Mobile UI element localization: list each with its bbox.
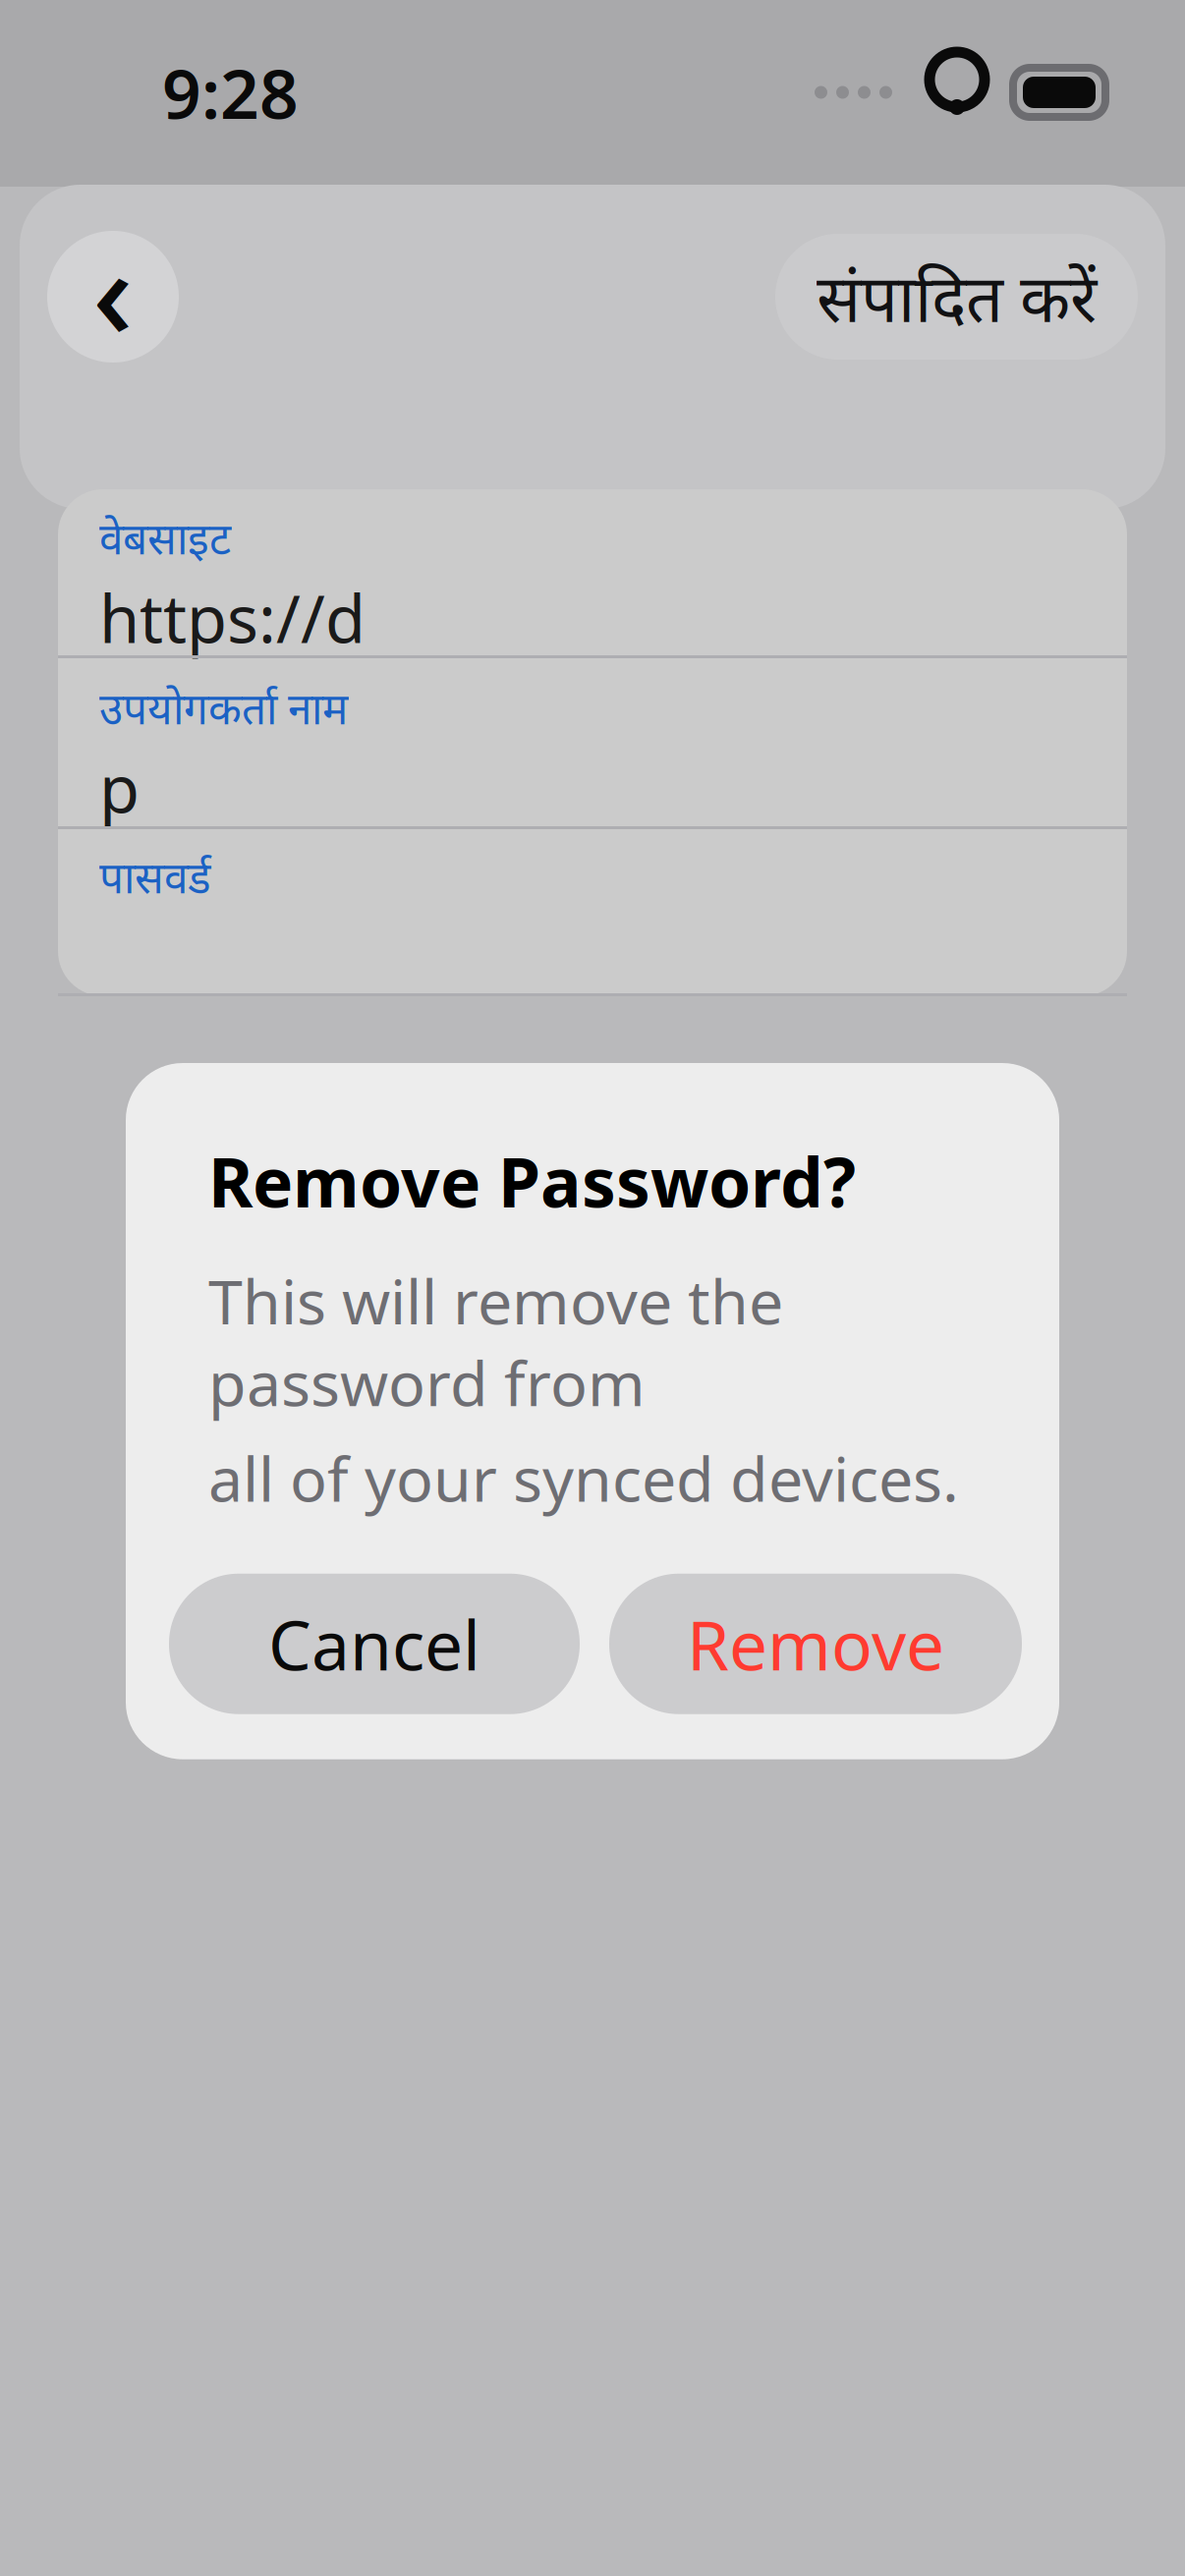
button[interactable]: वेबसाइट <box>58 489 1127 655</box>
staticText: Remove Password? <box>208 1136 856 1226</box>
button[interactable]: Back <box>47 231 179 363</box>
staticText: संपादित करें <box>817 253 1097 340</box>
staticText: Cancel <box>268 1599 480 1689</box>
staticText: This will remove the password from <box>208 1260 783 1423</box>
button[interactable]: संपादित करें <box>775 234 1138 360</box>
staticText: ‹ <box>92 206 134 373</box>
staticText: https://d <box>99 574 366 661</box>
staticText: वेबसाइट <box>99 509 231 566</box>
staticText: all of your synced devices. <box>208 1437 959 1519</box>
staticText: उपयोगकर्ता नाम <box>99 679 348 736</box>
button[interactable]: Remove <box>609 1574 1022 1714</box>
staticText: p <box>99 744 140 831</box>
button[interactable]: पासवर्ड <box>58 829 1127 993</box>
button[interactable]: उपयोगकर्ता नाम <box>58 658 1127 826</box>
staticText: पासवर्ड <box>99 848 211 905</box>
button[interactable]: Cancel <box>169 1574 580 1714</box>
staticText: 9:28 <box>162 47 299 138</box>
staticText: Remove <box>687 1599 944 1689</box>
